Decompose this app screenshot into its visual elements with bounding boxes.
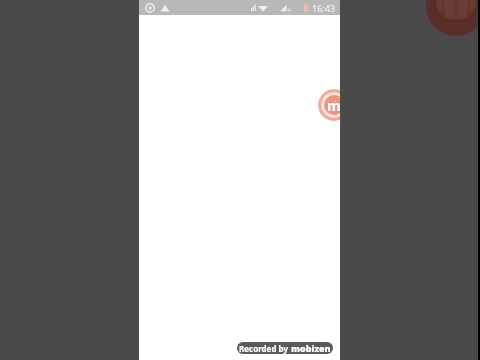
button[interactable]: Mobizen floating button: [318, 89, 340, 121]
staticText: 16:43: [312, 2, 336, 14]
staticText: mobizen: [291, 342, 331, 354]
staticText: Recorded by: [239, 343, 291, 354]
staticText: m: [327, 96, 340, 115]
